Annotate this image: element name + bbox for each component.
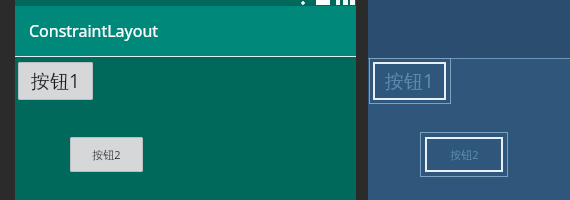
button[interactable]: 按钮1 blueprint outline (369, 58, 451, 104)
button[interactable]: 按钮2 (425, 137, 503, 172)
staticText: ConstraintLayout (29, 20, 159, 42)
staticText: 按钮1 (385, 68, 434, 94)
button[interactable]: 按钮2 blueprint outline (420, 132, 508, 177)
button[interactable]: 按钮1 (18, 62, 93, 100)
staticText: 按钮2 (450, 147, 479, 162)
staticText: 按钮1 (31, 68, 80, 94)
button[interactable]: 按钮1 (373, 62, 446, 100)
staticText: 按钮2 (92, 147, 121, 162)
button[interactable]: 按钮2 (70, 137, 143, 172)
